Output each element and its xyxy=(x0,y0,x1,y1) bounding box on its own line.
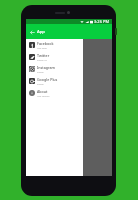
staticText: Follow xyxy=(37,83,44,86)
staticText: Twitter xyxy=(37,53,50,58)
staticText: Instagram xyxy=(37,65,55,70)
staticText: App Version xyxy=(37,95,50,98)
staticText: App xyxy=(37,29,45,35)
staticText: 3:26 PM xyxy=(94,19,110,24)
button[interactable]: Facebook xyxy=(26,39,83,51)
staticText: Follow xyxy=(37,71,44,74)
button[interactable]: Google Plus xyxy=(26,75,83,87)
staticText: Google Plus xyxy=(37,77,58,82)
staticText: Facebook xyxy=(37,41,54,46)
button[interactable]: Instagram xyxy=(26,63,83,75)
staticText: Follow Us xyxy=(37,59,47,62)
button[interactable]: About xyxy=(26,87,83,99)
staticText: About xyxy=(37,89,48,94)
button[interactable]: Twitter xyxy=(26,51,83,63)
staticText: Like Page xyxy=(37,47,47,50)
button[interactable]: Back xyxy=(28,28,36,36)
